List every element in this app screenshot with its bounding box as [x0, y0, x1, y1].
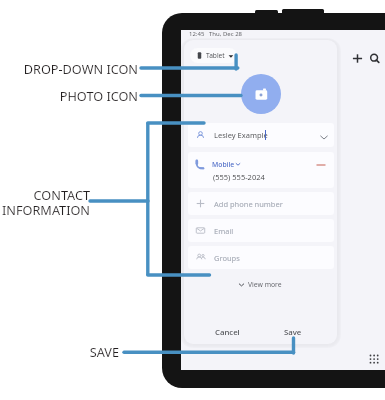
staticText: Lesley Example — [214, 130, 268, 140]
button[interactable]: Create contact — [350, 51, 365, 66]
staticText: SAVE — [0, 343, 119, 360]
button[interactable]: Email — [188, 219, 334, 242]
button[interactable]: Groups — [188, 246, 334, 269]
button[interactable]: Lesley Example — [188, 123, 334, 147]
staticText: DROP-DOWN ICON — [0, 60, 138, 77]
button[interactable]: View more — [238, 277, 282, 291]
button[interactable]: Remove phone number — [314, 158, 328, 172]
button[interactable]: Cancel — [210, 323, 245, 339]
staticText: Tablet — [206, 51, 225, 60]
button[interactable]: Add photo — [241, 74, 281, 114]
button[interactable]: Tablet — [196, 48, 234, 63]
button[interactable]: Mobile — [188, 152, 334, 188]
button[interactable]: Save — [279, 323, 307, 339]
staticText: Cancel — [215, 327, 240, 335]
button[interactable]: All apps — [369, 354, 380, 365]
staticText: CONTACT INFORMATION — [0, 186, 90, 218]
button[interactable]: Search — [367, 51, 382, 66]
staticText: Email — [214, 226, 234, 236]
staticText: View more — [248, 280, 282, 289]
staticText: 12:45 Thu, Dec 28 — [189, 30, 243, 38]
button[interactable]: Add phone number — [188, 192, 334, 215]
staticText: (555) 555-2024 — [213, 172, 265, 182]
staticText: Groups — [214, 253, 240, 263]
staticText: PHOTO ICON — [0, 87, 138, 104]
staticText: Save — [284, 327, 302, 335]
staticText: Mobile — [212, 160, 235, 169]
staticText: Add phone number — [214, 199, 283, 209]
